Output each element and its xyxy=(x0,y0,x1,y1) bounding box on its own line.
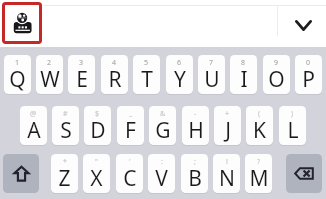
button[interactable]: $ xyxy=(84,106,111,145)
staticText: _ xyxy=(129,109,133,119)
staticText: I xyxy=(240,65,248,94)
button[interactable]: 4 xyxy=(101,55,128,94)
staticText: ! xyxy=(226,157,228,167)
button[interactable]: Shift xyxy=(3,154,39,193)
staticText: D xyxy=(90,116,106,145)
staticText: # xyxy=(63,109,68,119)
button[interactable]: 6 xyxy=(166,55,193,94)
button[interactable]: 7 xyxy=(198,55,225,94)
staticText: ; xyxy=(194,157,196,167)
button[interactable]: : xyxy=(148,154,175,193)
staticText: 8 xyxy=(241,58,246,68)
staticText: K xyxy=(253,116,266,145)
button[interactable]: Switch language xyxy=(2,2,42,44)
staticText: ) xyxy=(291,109,294,119)
staticText: 2 xyxy=(47,58,52,68)
staticText: S xyxy=(60,116,72,145)
staticText: 1 xyxy=(15,58,20,68)
staticText: U xyxy=(204,65,220,94)
button[interactable]: 9 xyxy=(263,55,290,94)
button[interactable]: & xyxy=(149,106,176,145)
button[interactable]: + xyxy=(214,106,241,145)
staticText: N xyxy=(219,164,235,193)
staticText: C xyxy=(123,164,137,193)
staticText: X xyxy=(90,164,103,193)
staticText: M xyxy=(249,164,269,193)
staticText: + xyxy=(225,109,230,119)
staticText: H xyxy=(188,116,204,145)
staticText: ( xyxy=(258,109,261,119)
staticText: G xyxy=(155,116,171,145)
staticText: V xyxy=(155,164,168,193)
staticText: 0 xyxy=(306,58,311,68)
button[interactable]: Hide keyboard xyxy=(288,10,318,40)
staticText: * xyxy=(63,157,67,167)
staticText: Y xyxy=(174,65,186,94)
staticText: - xyxy=(194,109,197,119)
staticText: E xyxy=(76,65,88,94)
staticText: 9 xyxy=(274,58,279,68)
staticText: B xyxy=(188,164,202,193)
staticText: R xyxy=(108,65,122,94)
button[interactable]: 2 xyxy=(36,55,63,94)
button[interactable]: # xyxy=(52,106,79,145)
staticText: P xyxy=(302,65,315,94)
button[interactable]: 3 xyxy=(68,55,95,94)
staticText: J xyxy=(225,116,231,145)
button[interactable]: 5 xyxy=(133,55,160,94)
button[interactable]: 1 xyxy=(4,55,31,94)
staticText: T xyxy=(141,65,153,94)
button[interactable]: ' xyxy=(116,154,143,193)
staticText: 7 xyxy=(209,58,214,68)
staticText: O xyxy=(268,65,285,94)
staticText: 6 xyxy=(177,58,182,68)
button[interactable]: ! xyxy=(213,154,240,193)
button[interactable]: * xyxy=(51,154,78,193)
button[interactable]: ; xyxy=(181,154,208,193)
staticText: Z xyxy=(58,164,71,193)
staticText: Q xyxy=(9,65,26,94)
staticText: & xyxy=(160,109,166,119)
staticText: ? xyxy=(257,157,261,167)
button[interactable]: 8 xyxy=(230,55,257,94)
staticText: 3 xyxy=(79,58,84,68)
button[interactable]: 0 xyxy=(295,55,322,94)
staticText: A xyxy=(27,116,41,145)
staticText: W xyxy=(40,65,60,94)
staticText: 5 xyxy=(144,58,149,68)
staticText: @ xyxy=(30,109,37,119)
staticText: ' xyxy=(129,157,131,167)
staticText: L xyxy=(287,116,299,145)
staticText: 4 xyxy=(112,58,117,68)
button[interactable]: _ xyxy=(117,106,144,145)
button[interactable]: @ xyxy=(20,106,47,145)
staticText: $ xyxy=(95,109,100,119)
staticText: : xyxy=(161,157,163,167)
button[interactable]: ) xyxy=(279,106,306,145)
staticText: F xyxy=(125,116,136,145)
button[interactable]: " xyxy=(83,154,110,193)
button[interactable]: ? xyxy=(245,154,272,193)
button[interactable]: - xyxy=(182,106,209,145)
staticText: " xyxy=(95,157,98,167)
button[interactable]: Backspace xyxy=(286,154,322,193)
button[interactable]: ( xyxy=(246,106,273,145)
